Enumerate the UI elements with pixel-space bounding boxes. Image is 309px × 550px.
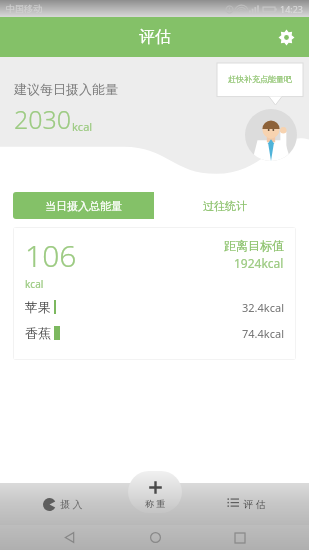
staticText: 14:23 bbox=[280, 3, 304, 15]
button[interactable]: 当日摄入总能量 bbox=[13, 192, 154, 219]
staticText: 中国移动 bbox=[6, 3, 42, 14]
button[interactable]: Recents bbox=[223, 525, 257, 550]
staticText: 摄 入 bbox=[60, 497, 83, 511]
staticText: 2030 bbox=[14, 102, 72, 136]
staticText: 过往统计 bbox=[203, 199, 247, 213]
staticText: 距离目标值 bbox=[224, 238, 284, 253]
staticText: 称 重 bbox=[145, 497, 166, 509]
button[interactable]: Home bbox=[138, 525, 172, 550]
staticText: 评估 bbox=[139, 27, 171, 47]
button[interactable]: 摄 入 bbox=[0, 483, 125, 525]
button[interactable]: 106 bbox=[13, 227, 296, 360]
button[interactable]: 评 估 bbox=[183, 483, 309, 525]
button[interactable]: Settings bbox=[271, 22, 301, 52]
button[interactable]: 过往统计 bbox=[154, 192, 296, 219]
staticText: 香蕉 bbox=[25, 325, 51, 341]
staticText: 赶快补充点能量吧 bbox=[228, 74, 292, 84]
staticText: 当日摄入总能量 bbox=[45, 199, 122, 213]
staticText: 建议每日摄入能量 bbox=[14, 81, 118, 97]
staticText: 评 估 bbox=[243, 497, 266, 511]
button[interactable]: 苹果 bbox=[25, 298, 284, 316]
button[interactable]: 香蕉 bbox=[25, 324, 284, 342]
staticText: 106 bbox=[25, 235, 77, 276]
staticText: 苹果 bbox=[25, 299, 51, 315]
button[interactable]: 称 重 bbox=[128, 471, 182, 513]
staticText: 74.4kcal bbox=[242, 326, 284, 341]
staticText: 32.4kcal bbox=[242, 300, 284, 315]
staticText: 1924kcal bbox=[234, 255, 284, 271]
button[interactable]: Back bbox=[52, 525, 86, 550]
staticText: kcal bbox=[25, 277, 44, 291]
staticText: kcal bbox=[72, 119, 93, 134]
